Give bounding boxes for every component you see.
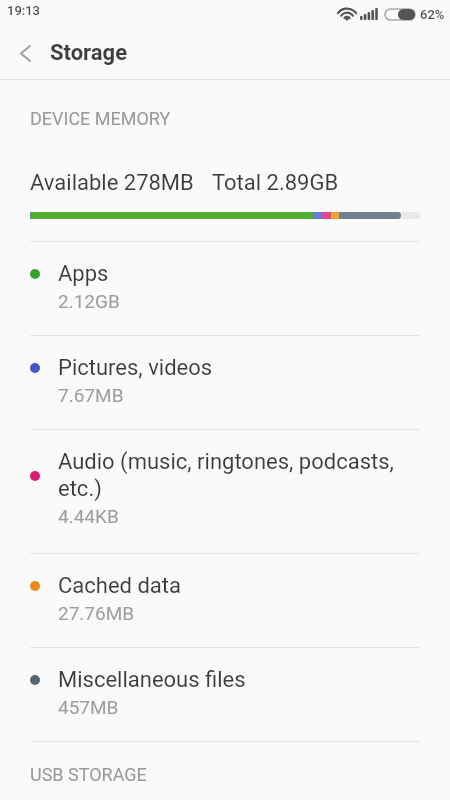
button[interactable]: Miscellaneous files [0,648,450,741]
staticText: Total 2.89GB [212,170,339,196]
staticText: Miscellaneous files [58,667,450,693]
staticText: Available 278MB [30,170,194,196]
staticText: 19:13 [7,3,41,18]
staticText: Audio (music, ringtones, podcasts, etc.) [58,449,450,502]
button[interactable]: Cached data [0,554,450,647]
button[interactable]: Audio (music, ringtones, podcasts, etc.) [0,430,450,553]
button[interactable]: Apps [0,242,450,335]
staticText: 2.12GB [58,290,120,312]
staticText: Cached data [58,573,450,599]
button[interactable]: Pictures, videos [0,336,450,429]
staticText: 7.67MB [58,384,124,406]
staticText: USB STORAGE [30,764,147,785]
staticText: Pictures, videos [58,355,450,381]
staticText: 62% [420,7,445,22]
staticText: DEVICE MEMORY [30,108,171,129]
staticText: Apps [58,261,450,287]
staticText: 457MB [58,696,119,718]
staticText: Storage [50,40,128,66]
staticText: 27.76MB [58,602,135,624]
button[interactable] [0,28,50,79]
staticText: 4.44KB [58,505,119,527]
